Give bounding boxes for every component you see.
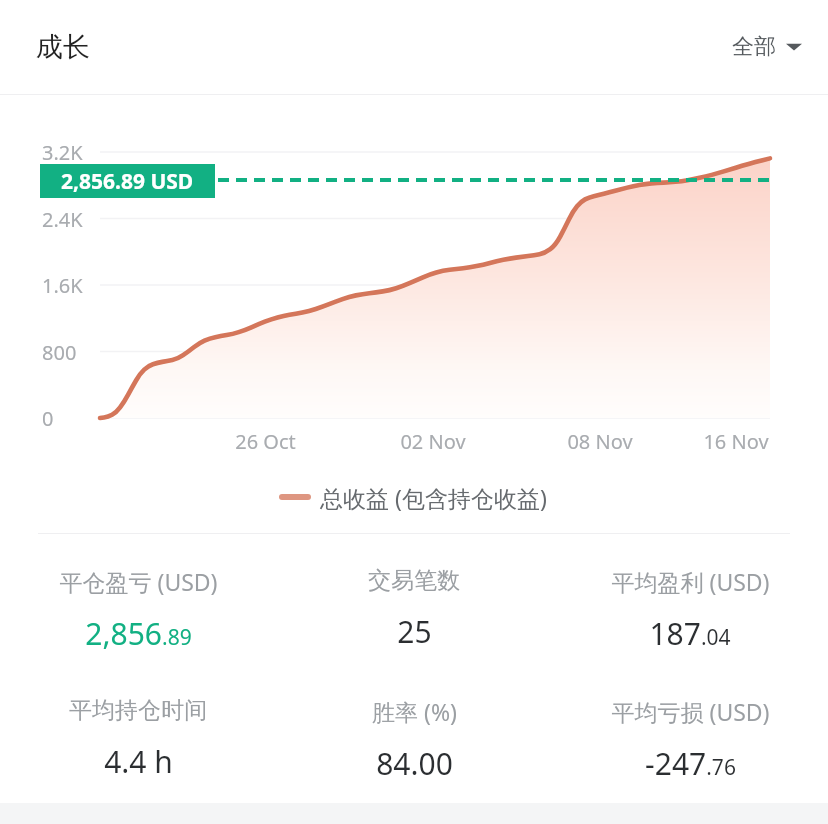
staticText: 全部 (732, 33, 776, 61)
staticText: 平仓盈亏 (USD) (59, 566, 218, 597)
staticText: -247.76 (645, 743, 736, 784)
staticText: 平均亏损 (USD) (611, 696, 770, 727)
button[interactable]: 2,856.89 USD (40, 164, 215, 198)
staticText: 84.00 (376, 743, 453, 784)
staticText: 2.4K (42, 206, 83, 233)
button[interactable]: 平均盈利 (USD) (552, 562, 828, 658)
staticText: 交易笔数 (368, 566, 460, 595)
staticText: 25 (397, 611, 432, 652)
staticText: 02 Nov (400, 428, 466, 455)
staticText: 3.2K (42, 139, 83, 166)
staticText: 16 Nov (703, 428, 769, 455)
button[interactable]: 平仓盈亏 (USD) (0, 562, 276, 658)
button[interactable]: 平均亏损 (USD) (552, 692, 828, 788)
staticText: 800 (42, 339, 77, 366)
staticText: 平均持仓时间 (69, 696, 207, 725)
staticText: 2,856.89 USD (61, 167, 194, 196)
staticText: 0 (42, 405, 54, 432)
staticText: 187.04 (649, 613, 731, 654)
staticText: 2,856.89 (85, 613, 192, 654)
button[interactable]: 全部 (714, 21, 828, 73)
button[interactable]: 胜率 (%) (276, 692, 552, 788)
staticText: 平均盈利 (USD) (611, 566, 770, 597)
staticText: 成长 (36, 30, 90, 64)
staticText: 4.4 h (104, 741, 173, 782)
button[interactable]: 平均持仓时间 (0, 692, 276, 786)
button[interactable]: 交易笔数 (276, 562, 552, 656)
staticText: 26 Oct (235, 428, 296, 455)
staticText: 胜率 (%) (372, 696, 457, 727)
staticText: 1.6K (42, 272, 83, 299)
staticText: 总收益 (包含持仓收益) (320, 482, 547, 513)
staticText: 08 Nov (567, 428, 633, 455)
